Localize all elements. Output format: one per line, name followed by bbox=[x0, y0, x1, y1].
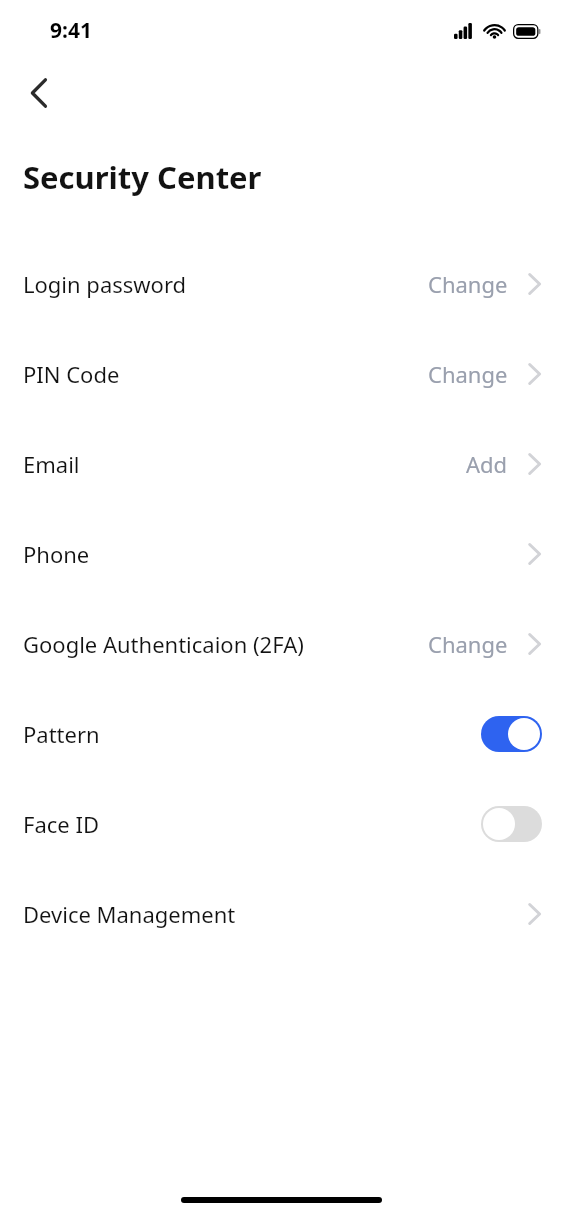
button[interactable]: Email bbox=[0, 419, 563, 509]
staticText: Pattern bbox=[23, 719, 100, 749]
button[interactable]: Login password bbox=[0, 239, 563, 329]
button[interactable]: PIN Code bbox=[0, 329, 563, 419]
button[interactable]: Face ID bbox=[0, 779, 563, 869]
button[interactable]: Phone bbox=[0, 509, 563, 599]
button[interactable]: Pattern on bbox=[481, 716, 542, 752]
button[interactable]: Google Authenticaion (2FA) bbox=[0, 599, 563, 689]
staticText: Change bbox=[428, 629, 508, 659]
button[interactable]: Pattern bbox=[0, 689, 563, 779]
staticText: Change bbox=[428, 269, 508, 299]
button[interactable]: Back bbox=[14, 68, 64, 118]
staticText: Add bbox=[466, 449, 508, 479]
staticText: 9:41 bbox=[50, 16, 92, 45]
staticText: Security Center bbox=[23, 156, 262, 198]
staticText: Login password bbox=[23, 269, 187, 299]
staticText: Change bbox=[428, 359, 508, 389]
button[interactable]: Face ID off bbox=[481, 806, 542, 842]
staticText: Phone bbox=[23, 539, 90, 569]
staticText: PIN Code bbox=[23, 359, 120, 389]
staticText: Google Authenticaion (2FA) bbox=[23, 629, 304, 659]
staticText: Face ID bbox=[23, 809, 99, 839]
staticText: Device Management bbox=[23, 899, 236, 929]
staticText: Email bbox=[23, 449, 80, 479]
button[interactable]: Device Management bbox=[0, 869, 563, 959]
